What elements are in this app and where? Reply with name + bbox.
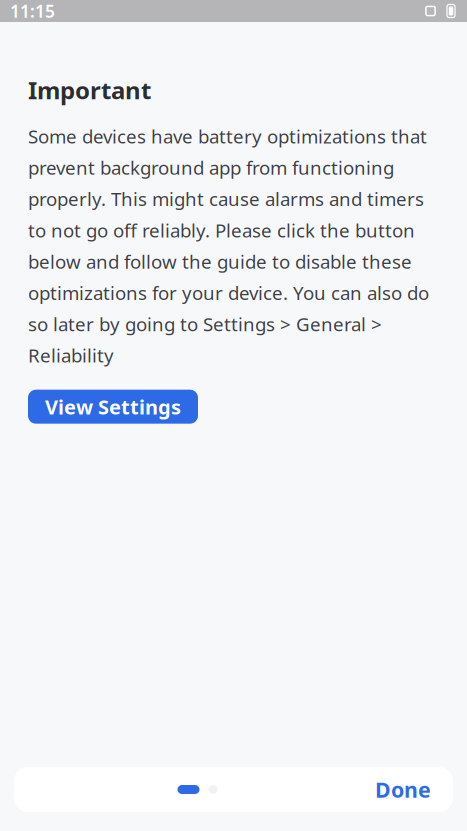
staticText: Some devices have battery optimizations … bbox=[28, 124, 429, 368]
button[interactable]: View Settings bbox=[28, 390, 198, 424]
staticText: View Settings bbox=[45, 393, 181, 420]
staticText: 11:15 bbox=[10, 0, 55, 22]
button[interactable]: Done bbox=[367, 767, 439, 812]
staticText: Done bbox=[375, 775, 431, 804]
staticText: Important bbox=[28, 74, 151, 106]
